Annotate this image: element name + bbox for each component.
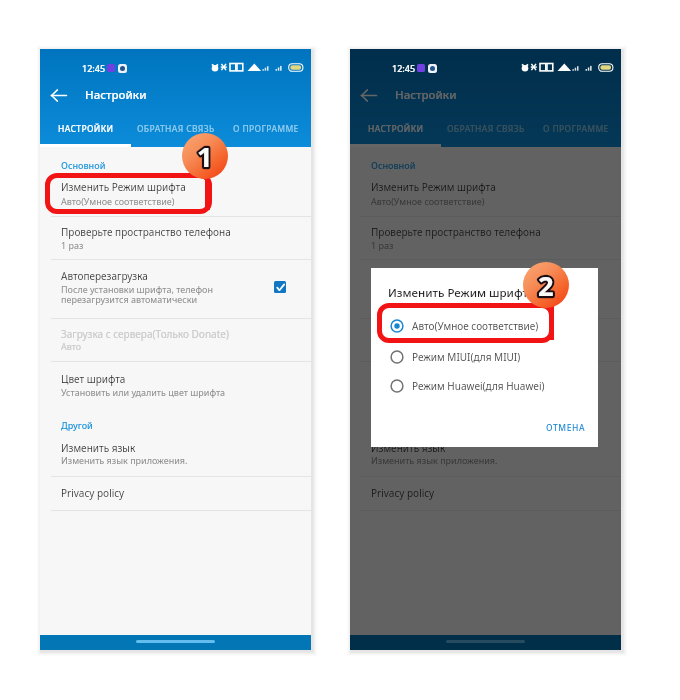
staticText: Изменить Режим шрифта: [61, 180, 186, 194]
staticText: Настройки: [395, 87, 457, 103]
button[interactable]: Privacy policy: [350, 477, 621, 510]
button[interactable]: Автоперезагрузка: [350, 260, 621, 318]
staticText: ОТМЕНА: [546, 422, 586, 434]
staticText: НАСТРОЙКИ: [368, 123, 424, 135]
button[interactable]: ОБРАТНАЯ СВЯЗЬ: [131, 118, 221, 147]
staticText: Изменить Режим шрифта: [371, 180, 496, 194]
button[interactable]: Изменить Режим шрифта: [40, 172, 311, 216]
button[interactable]: Загрузка с сервера(Только Donate): [350, 319, 621, 361]
staticText: 12:45: [392, 62, 416, 74]
button[interactable]: Изменить Режим шрифта: [350, 172, 621, 216]
staticText: Privacy policy: [61, 486, 125, 500]
staticText: НАСТРОЙКИ: [58, 123, 114, 135]
staticText: О ПРОГРАММЕ: [543, 123, 609, 135]
button[interactable]: Цвет шрифта: [40, 362, 311, 405]
staticText: 1: [197, 138, 213, 175]
staticText: Авто: [371, 340, 392, 352]
button[interactable]: Режим MIUI(для MIUI): [371, 342, 598, 372]
staticText: Другой: [61, 419, 93, 431]
staticText: Загрузка с сервера(Только Donate): [371, 327, 539, 341]
button[interactable]: О ПРОГРАММЕ: [221, 118, 311, 147]
staticText: Privacy policy: [371, 486, 435, 500]
staticText: О ПРОГРАММЕ: [233, 123, 299, 135]
staticText: После установки шрифта, телефон: [61, 283, 213, 295]
staticText: Изменить язык: [371, 441, 446, 455]
staticText: 1 раз: [61, 239, 84, 251]
button[interactable]: НАСТРОЙКИ: [350, 118, 441, 147]
button[interactable]: Загрузка с сервера(Только Donate): [40, 319, 311, 361]
staticText: Режим Huawei(для Huawei): [412, 379, 545, 393]
button[interactable]: Режим Huawei(для Huawei): [371, 371, 598, 401]
button[interactable]: Privacy policy: [40, 477, 311, 510]
staticText: Авто: [61, 340, 82, 352]
staticText: Проверьте пространство телефона: [61, 225, 231, 239]
staticText: ОБРАТНАЯ СВЯЗЬ: [137, 123, 215, 135]
button[interactable]: Назад: [355, 82, 381, 108]
staticText: Основной: [61, 159, 106, 171]
staticText: Цвет шрифта: [61, 372, 126, 386]
staticText: ОБРАТНАЯ СВЯЗЬ: [447, 123, 525, 135]
staticText: Загрузка с сервера(Только Donate): [61, 327, 229, 341]
staticText: Авто(Умное соответствие): [412, 319, 539, 333]
button[interactable]: Изменить язык: [40, 432, 311, 476]
staticText: 1: [197, 138, 213, 175]
staticText: Изменить язык приложения.: [61, 454, 188, 466]
button[interactable]: Автоперезагрузка: [274, 281, 286, 293]
staticText: Проверьте пространство телефона: [371, 225, 541, 239]
staticText: 2: [538, 267, 554, 304]
button[interactable]: Изменить язык: [350, 432, 621, 476]
staticText: Настройки: [85, 87, 147, 103]
staticText: перезагрузится автоматически: [61, 293, 198, 305]
staticText: Авто(Умное соответствие): [371, 195, 485, 207]
button[interactable]: Автоперезагрузка: [40, 260, 311, 318]
staticText: Режим MIUI(для MIUI): [412, 350, 521, 364]
staticText: Установить или удалить цвет шрифта: [371, 386, 536, 398]
staticText: Изменить язык приложения.: [371, 454, 498, 466]
button[interactable]: Авто(Умное соответствие): [371, 311, 598, 341]
button[interactable]: Проверьте пространство телефона: [350, 217, 621, 260]
button[interactable]: О ПРОГРАММЕ: [531, 118, 621, 147]
button[interactable]: НАСТРОЙКИ: [40, 118, 131, 147]
staticText: Основной: [371, 159, 416, 171]
button[interactable]: Назад: [45, 82, 71, 108]
button[interactable]: Проверьте пространство телефона: [40, 217, 311, 260]
staticText: Изменить Режим шрифта: [388, 285, 535, 301]
staticText: 1 раз: [371, 239, 394, 251]
staticText: 2: [538, 267, 554, 304]
staticText: После установки шрифта, телефон: [371, 283, 523, 295]
button[interactable]: ОТМЕНА: [540, 417, 592, 439]
staticText: Цвет шрифта: [371, 372, 436, 386]
staticText: Автоперезагрузка: [61, 269, 148, 283]
staticText: 12:45: [82, 62, 106, 74]
button[interactable]: Цвет шрифта: [350, 362, 621, 405]
button[interactable]: ОБРАТНАЯ СВЯЗЬ: [441, 118, 531, 147]
staticText: Установить или удалить цвет шрифта: [61, 386, 226, 398]
staticText: перезагрузится автоматически: [371, 293, 508, 305]
staticText: Авто(Умное соответствие): [61, 195, 175, 207]
staticText: Изменить язык: [61, 441, 136, 455]
